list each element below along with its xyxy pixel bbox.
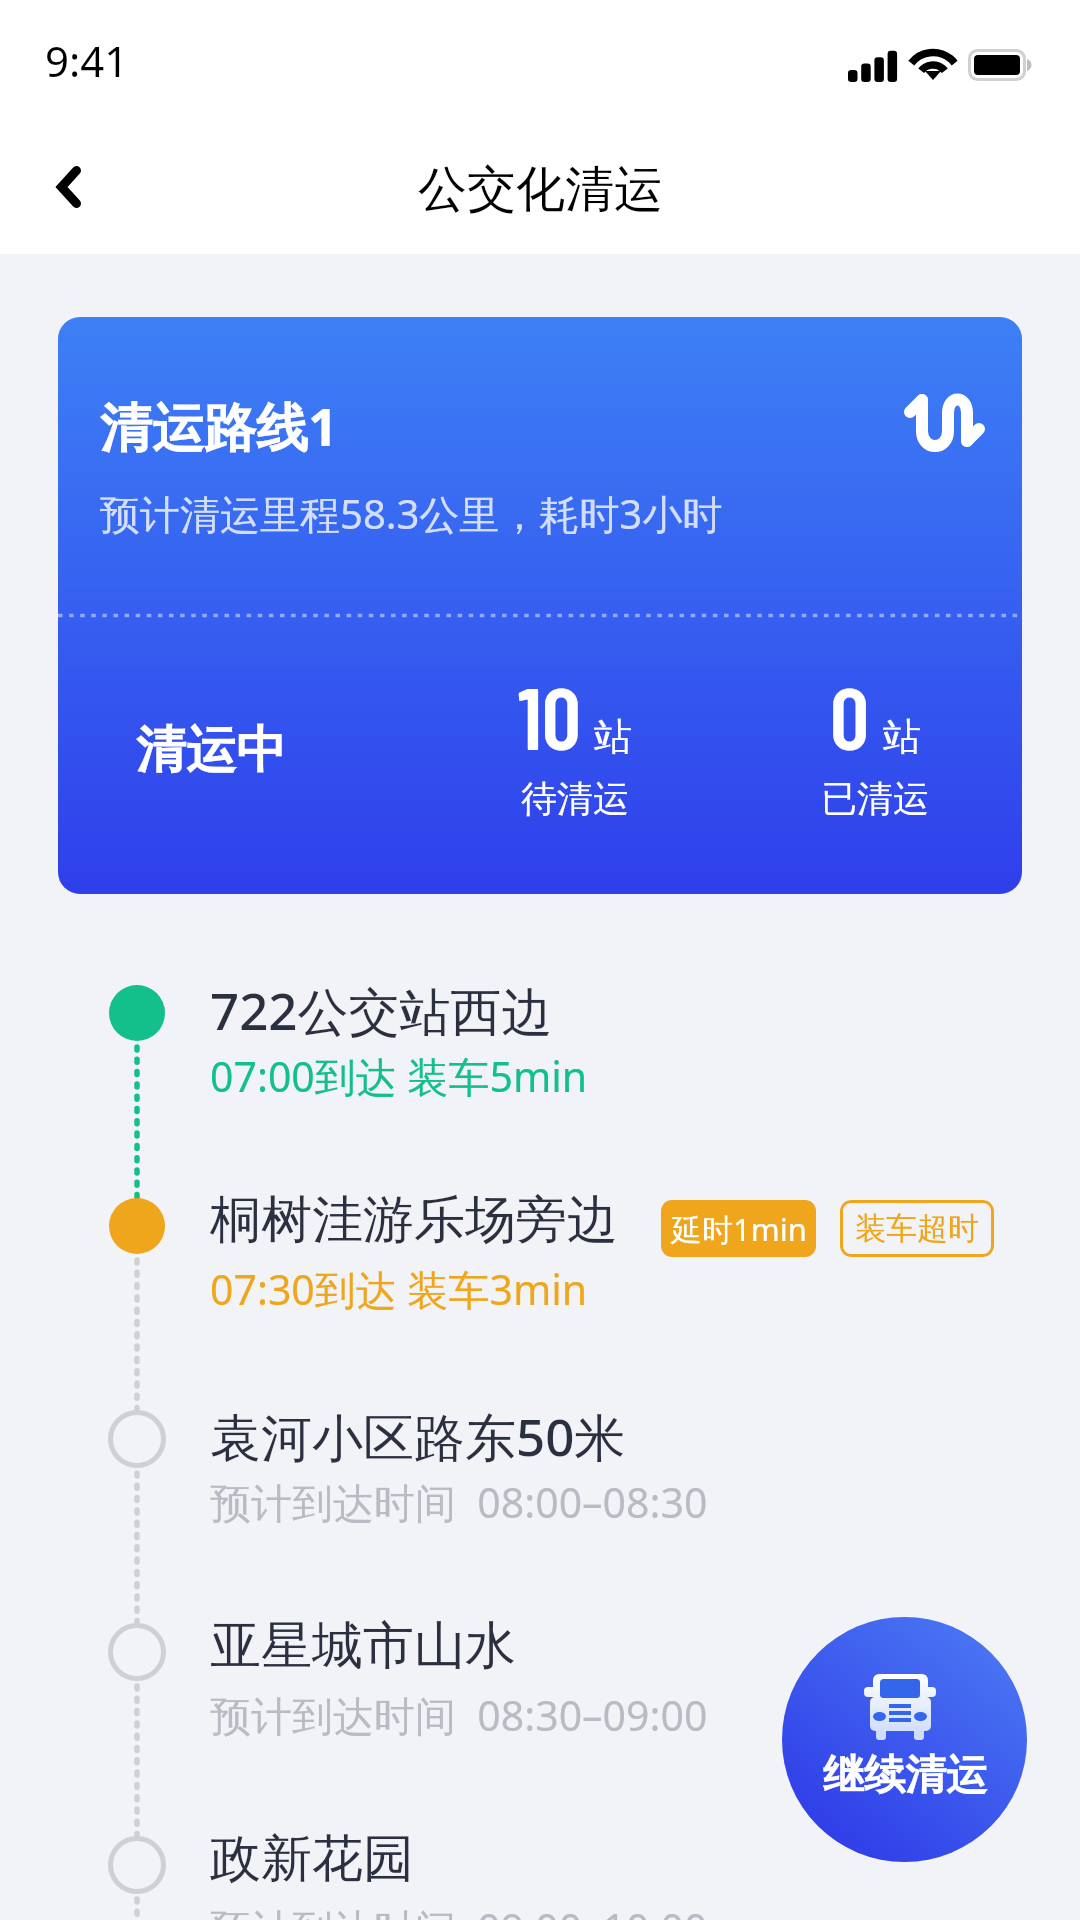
staticText: 继续清运 xyxy=(823,1750,987,1802)
staticText: 站 xyxy=(883,713,921,761)
staticText: 待清运 xyxy=(521,776,629,821)
staticText: 预计到达时间 09:00–10:00 xyxy=(210,1900,708,1920)
button[interactable]: 装车超时 xyxy=(840,1200,994,1257)
staticText: 预计到达时间 08:00–08:30 xyxy=(210,1474,708,1530)
button[interactable]: 继续清运 xyxy=(782,1617,1027,1862)
button[interactable]: 政新花园 xyxy=(0,1813,1080,1920)
staticText: 已清运 xyxy=(821,776,929,821)
staticText: 0 xyxy=(830,663,870,767)
staticText: 07:30到达 装车3min xyxy=(210,1261,588,1317)
staticText: 袁河小区路东50米 xyxy=(210,1401,626,1471)
staticText: 9:41 xyxy=(45,32,129,89)
button[interactable]: 722公交站西边 xyxy=(0,961,1080,1174)
staticText: 政新花园 xyxy=(210,1827,414,1891)
staticText: 10 xyxy=(518,663,581,767)
staticText: 延时1min xyxy=(671,1208,807,1250)
button[interactable]: 延时1min xyxy=(661,1200,816,1257)
staticText: 桐树洼游乐场旁边 xyxy=(210,1188,618,1252)
staticText: 公交化清运 xyxy=(418,159,663,221)
staticText: 亚星城市山水 xyxy=(210,1614,516,1678)
button[interactable]: Back xyxy=(14,132,124,254)
staticText: 装车超时 xyxy=(855,1209,979,1248)
staticText: 07:00到达 装车5min xyxy=(210,1048,588,1104)
staticText: 预计清运里程58.3公里，耗时3小时 xyxy=(100,486,723,541)
staticText: 预计到达时间 08:30–09:00 xyxy=(210,1687,708,1743)
staticText: 清运路线1 xyxy=(100,390,338,461)
button[interactable]: 清运路线1 xyxy=(58,317,1022,894)
staticText: 清运中 xyxy=(136,719,286,782)
button[interactable]: 袁河小区路东50米 xyxy=(0,1387,1080,1600)
staticText: 站 xyxy=(594,713,632,761)
button[interactable]: 桐树洼游乐场旁边 xyxy=(0,1174,1080,1387)
button[interactable]: 亚星城市山水 xyxy=(0,1600,1080,1813)
staticText: 722公交站西边 xyxy=(210,975,553,1045)
